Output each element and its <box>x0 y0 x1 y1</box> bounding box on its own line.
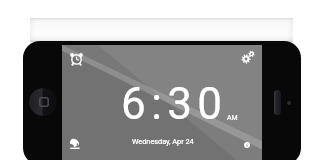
staticText: AM <box>227 114 238 122</box>
button[interactable]: Info <box>244 142 250 148</box>
button[interactable]: Home <box>29 88 57 116</box>
staticText: 6:30 <box>121 78 228 130</box>
button[interactable]: Alarms <box>65 47 87 69</box>
button[interactable]: Settings <box>237 46 259 68</box>
staticText: Wednesday, Apr 24 <box>132 137 194 146</box>
button[interactable]: Alarm sound <box>64 132 86 154</box>
